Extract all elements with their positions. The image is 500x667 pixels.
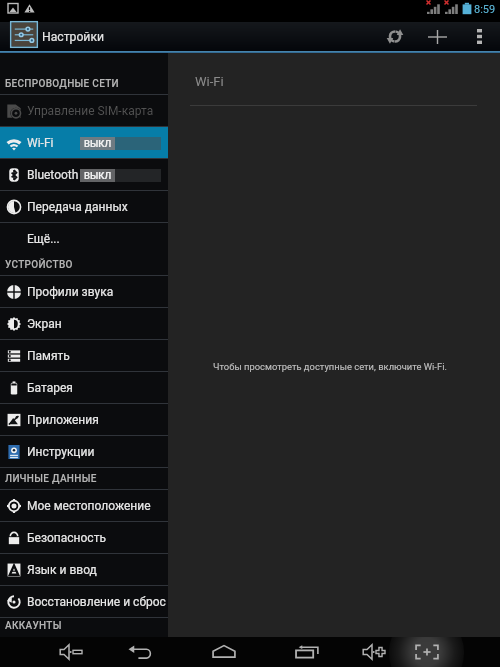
button[interactable]: Add bbox=[416, 22, 458, 51]
staticText: Восстановление и сброс bbox=[27, 595, 166, 609]
button[interactable]: Ещё... bbox=[0, 223, 168, 255]
staticText: ЛИЧНЫЕ ДАННЫЕ bbox=[5, 473, 97, 485]
button[interactable]: Управление SIM-карта bbox=[0, 95, 168, 127]
button[interactable]: Settings bbox=[10, 21, 38, 48]
staticText: Чтобы просмотреть доступные сети, включи… bbox=[213, 361, 447, 372]
button[interactable]: Sync bbox=[374, 22, 416, 51]
button[interactable]: Recent apps bbox=[290, 637, 326, 667]
staticText: Батарея bbox=[27, 381, 73, 395]
button[interactable]: Инструкции bbox=[0, 436, 168, 468]
button[interactable]: Безопасность bbox=[0, 522, 168, 554]
staticText: Язык и ввод bbox=[27, 563, 97, 577]
staticText: ВЫКЛ bbox=[84, 170, 112, 181]
staticText: УСТРОЙСТВО bbox=[5, 259, 73, 271]
button[interactable]: Батарея bbox=[0, 372, 168, 404]
button[interactable]: Toggle Bluetooth bbox=[80, 169, 161, 182]
button[interactable]: More options bbox=[458, 22, 500, 51]
button[interactable]: Передача данных bbox=[0, 191, 168, 223]
staticText: Профили звука bbox=[27, 285, 114, 299]
staticText: БЕСПРОВОДНЫЕ СЕТИ bbox=[5, 78, 119, 90]
button[interactable]: Восстановление и сброс bbox=[0, 586, 168, 618]
button[interactable]: Volume up bbox=[357, 637, 393, 667]
staticText: Приложения bbox=[27, 413, 99, 427]
staticText: Передача данных bbox=[27, 200, 128, 214]
staticText: ВЫКЛ bbox=[84, 138, 112, 149]
staticText: Ещё... bbox=[27, 232, 60, 246]
button[interactable]: Язык и ввод bbox=[0, 554, 168, 586]
staticText: 8:59 bbox=[474, 3, 496, 16]
staticText: АККАУНТЫ bbox=[5, 620, 62, 632]
staticText: Безопасность bbox=[27, 531, 106, 545]
staticText: Память bbox=[27, 349, 70, 363]
button[interactable]: Мое местоположение bbox=[0, 490, 168, 522]
button[interactable]: Память bbox=[0, 340, 168, 372]
button[interactable]: Back bbox=[123, 637, 159, 667]
button[interactable]: Volume down bbox=[54, 637, 90, 667]
button[interactable]: Приложения bbox=[0, 404, 168, 436]
button[interactable]: Профили звука bbox=[0, 276, 168, 308]
staticText: Управление SIM-карта bbox=[27, 104, 154, 118]
staticText: Настройки bbox=[42, 30, 105, 44]
button[interactable]: Home bbox=[206, 637, 242, 667]
button[interactable]: Toggle Wi-Fi bbox=[80, 137, 161, 150]
staticText: Экран bbox=[27, 317, 62, 331]
button[interactable]: Экран bbox=[0, 308, 168, 340]
staticText: Bluetooth bbox=[27, 168, 79, 182]
button[interactable]: Screenshot bbox=[409, 637, 445, 667]
staticText: Инструкции bbox=[27, 445, 95, 459]
staticText: Wi-Fi bbox=[27, 136, 54, 150]
button[interactable]: Wi-Fi bbox=[0, 127, 168, 159]
staticText: Wi-Fi bbox=[195, 74, 224, 89]
staticText: Мое местоположение bbox=[27, 499, 151, 513]
button[interactable]: Bluetooth bbox=[0, 159, 168, 191]
